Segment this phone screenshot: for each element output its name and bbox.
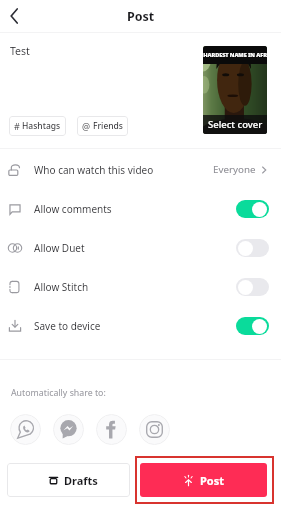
button[interactable]: Allow Stitch bbox=[0, 267, 281, 306]
staticText: Post bbox=[200, 473, 225, 488]
button[interactable]: Allow comments bbox=[0, 189, 281, 228]
button[interactable]: Facebook bbox=[96, 414, 127, 445]
button[interactable]: Who can watch this video bbox=[0, 150, 281, 189]
staticText: Allow comments bbox=[34, 202, 112, 216]
staticText: @ bbox=[82, 120, 91, 132]
staticText: Post bbox=[127, 8, 155, 25]
staticText: Test bbox=[10, 44, 30, 58]
button[interactable]: WhatsApp bbox=[10, 414, 41, 445]
staticText: Who can watch this video bbox=[34, 163, 154, 177]
staticText: Drafts bbox=[64, 473, 98, 488]
button[interactable] bbox=[236, 239, 269, 257]
button[interactable]: @ bbox=[77, 116, 128, 136]
button[interactable] bbox=[236, 278, 269, 296]
staticText: Automatically share to: bbox=[11, 387, 106, 399]
button[interactable]: Instagram bbox=[139, 414, 170, 445]
staticText: Select cover bbox=[208, 118, 263, 131]
button[interactable] bbox=[236, 200, 269, 218]
button[interactable]: # bbox=[9, 116, 66, 136]
staticText: Hashtags bbox=[22, 120, 61, 132]
button[interactable]: Back bbox=[1, 3, 27, 29]
button[interactable]: Drafts bbox=[7, 463, 130, 497]
staticText: HARDEST NAME IN AFRICA bbox=[203, 51, 267, 59]
staticText: Allow Duet bbox=[34, 241, 85, 255]
button[interactable]: Messenger bbox=[53, 414, 84, 445]
button[interactable]: Select cover bbox=[203, 46, 267, 134]
staticText: # bbox=[14, 120, 20, 132]
staticText: Allow Stitch bbox=[34, 280, 89, 294]
button[interactable]: Save to device bbox=[0, 306, 281, 345]
button[interactable]: Allow Duet bbox=[0, 228, 281, 267]
button[interactable]: Post bbox=[140, 463, 267, 497]
staticText: Everyone bbox=[213, 163, 256, 176]
button[interactable] bbox=[236, 317, 269, 335]
staticText: Friends bbox=[93, 120, 123, 132]
staticText: Save to device bbox=[34, 319, 101, 333]
